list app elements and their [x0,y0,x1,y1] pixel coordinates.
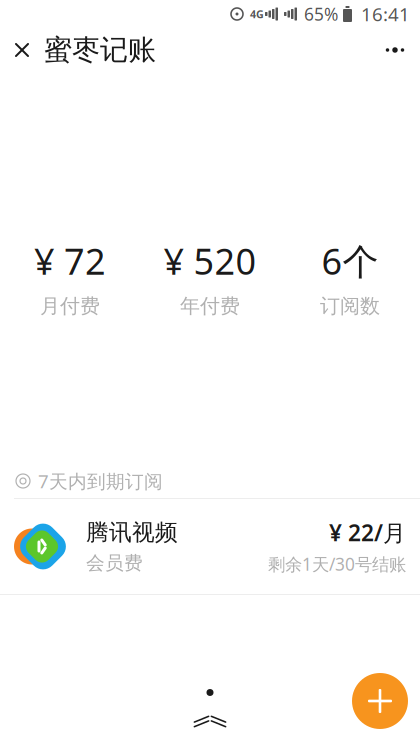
staticText: 腾讯视频 [86,519,178,546]
staticText: 月付费 [40,294,100,318]
staticText: 年付费 [180,294,240,318]
button[interactable]: 添加订阅 [346,667,414,735]
button[interactable]: 关闭 [0,28,44,72]
staticText: 订阅数 [320,294,380,318]
staticText: 会员费 [86,551,143,574]
staticText: ¥ 520 [163,237,256,285]
staticText: ¥ 22/月 [329,517,406,547]
staticText: 65% [304,2,338,25]
staticText: 6个 [321,237,378,285]
staticText: ¥ 72 [34,237,106,285]
button[interactable]: 更多 [370,28,420,72]
staticText: 16:41 [361,2,410,26]
staticText: 蜜枣记账 [44,33,156,67]
button[interactable]: 腾讯视频 [0,499,420,594]
staticText: 剩余1天/30号结账 [268,552,406,575]
staticText: 7天内到期订阅 [38,469,163,493]
staticText: 4G [250,7,264,21]
